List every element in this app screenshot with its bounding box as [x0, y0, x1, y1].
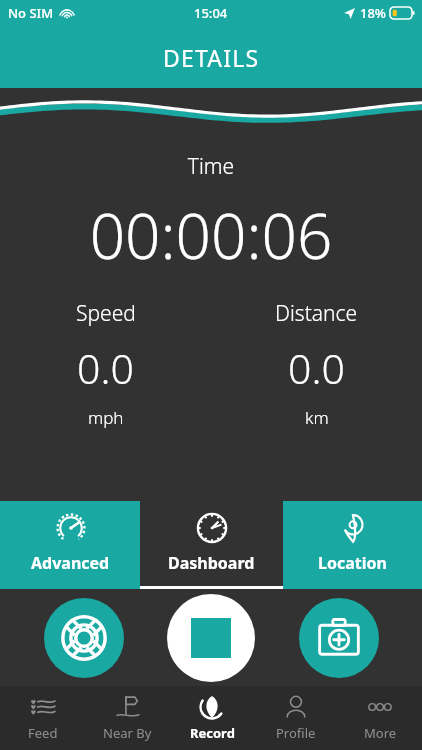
staticText: Distance: [275, 299, 358, 328]
staticText: No SIM: [8, 4, 54, 22]
button[interactable]: Feed: [0, 686, 85, 750]
button[interactable]: Stop: [167, 594, 255, 682]
staticText: 00:00:06: [0, 193, 422, 277]
staticText: 18%: [360, 4, 386, 22]
staticText: Feed: [28, 724, 58, 742]
button[interactable]: Dashboard: [140, 501, 283, 589]
staticText: km: [305, 406, 329, 429]
button[interactable]: More: [338, 686, 422, 750]
staticText: mph: [88, 406, 124, 429]
button[interactable]: Advanced: [0, 501, 140, 589]
button[interactable]: Location: [283, 501, 422, 589]
staticText: Near By: [103, 724, 152, 742]
button[interactable]: First aid: [299, 598, 379, 678]
button[interactable]: Record: [170, 686, 254, 750]
staticText: DETAILS: [163, 42, 260, 73]
staticText: More: [364, 724, 397, 742]
staticText: 15:04: [194, 4, 228, 22]
staticText: Dashboard: [168, 552, 255, 574]
staticText: Time: [0, 152, 422, 181]
staticText: Speed: [76, 299, 136, 328]
button[interactable]: Help: [44, 598, 124, 678]
staticText: 0.0: [77, 340, 134, 396]
staticText: Location: [318, 552, 387, 574]
staticText: 0.0: [288, 340, 345, 396]
staticText: Record: [190, 724, 235, 742]
staticText: Profile: [276, 724, 316, 742]
button[interactable]: Profile: [254, 686, 338, 750]
button[interactable]: Near By: [85, 686, 170, 750]
staticText: Advanced: [31, 552, 110, 574]
